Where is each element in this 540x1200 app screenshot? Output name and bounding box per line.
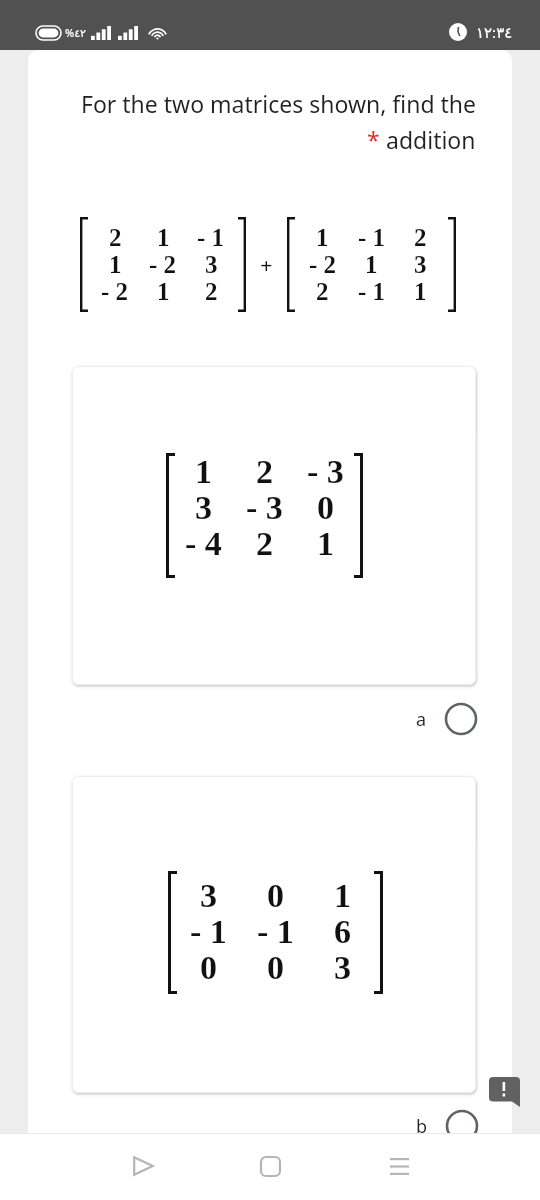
staticText: - 3: [246, 489, 283, 525]
button[interactable]: Home: [245, 1141, 295, 1191]
staticText: 2: [316, 278, 329, 305]
staticText: 3: [205, 251, 218, 278]
staticText: - 1: [197, 224, 225, 251]
staticText: addition: [386, 124, 476, 155]
staticText: 2: [256, 453, 273, 489]
staticText: - 1: [190, 913, 227, 949]
staticText: 3: [414, 251, 427, 278]
staticText: 1: [334, 877, 351, 913]
staticText: 0: [267, 877, 284, 913]
staticText: 3: [195, 489, 212, 525]
staticText: 1: [157, 224, 170, 251]
staticText: - 4: [185, 525, 222, 561]
staticText: - 2: [149, 251, 177, 278]
staticText: 0: [267, 949, 284, 985]
staticText: 1: [414, 278, 427, 305]
staticText: 1: [316, 224, 329, 251]
staticText: For the two matrices shown, find the: [80, 88, 476, 119]
staticText: - 2: [101, 278, 129, 305]
staticText: 1: [157, 278, 170, 305]
staticText: 0: [200, 949, 217, 985]
staticText: 3: [200, 877, 217, 913]
staticText: 1: [195, 453, 212, 489]
staticText: 3: [334, 949, 351, 985]
staticText: 0: [317, 489, 334, 525]
button[interactable]: b: [416, 1110, 478, 1133]
staticText: - 1: [358, 224, 386, 251]
staticText: - 1: [257, 913, 294, 949]
staticText: 2: [109, 224, 122, 251]
staticText: 1: [365, 251, 378, 278]
staticText: 6: [334, 913, 351, 949]
button[interactable]: Recent apps: [374, 1141, 424, 1191]
staticText: ١٢:٣٤: [476, 22, 513, 42]
staticText: a: [416, 707, 427, 732]
staticText: %٤٢: [65, 25, 86, 40]
button[interactable]: a: [416, 703, 477, 735]
button[interactable]: 3: [72, 776, 476, 1093]
button[interactable]: Required question warning: [489, 1077, 520, 1107]
button[interactable]: 1: [72, 366, 476, 685]
button[interactable]: Back: [118, 1141, 168, 1191]
staticText: 2: [414, 224, 427, 251]
staticText: 2: [256, 525, 273, 561]
staticText: 2: [205, 278, 218, 305]
staticText: *: [367, 124, 380, 155]
staticText: - 3: [307, 453, 344, 489]
staticText: b: [416, 1114, 428, 1133]
staticText: - 1: [358, 278, 386, 305]
staticText: +: [260, 253, 273, 277]
staticText: - 2: [309, 251, 337, 278]
staticText: 1: [109, 251, 122, 278]
staticText: 1: [317, 525, 334, 561]
